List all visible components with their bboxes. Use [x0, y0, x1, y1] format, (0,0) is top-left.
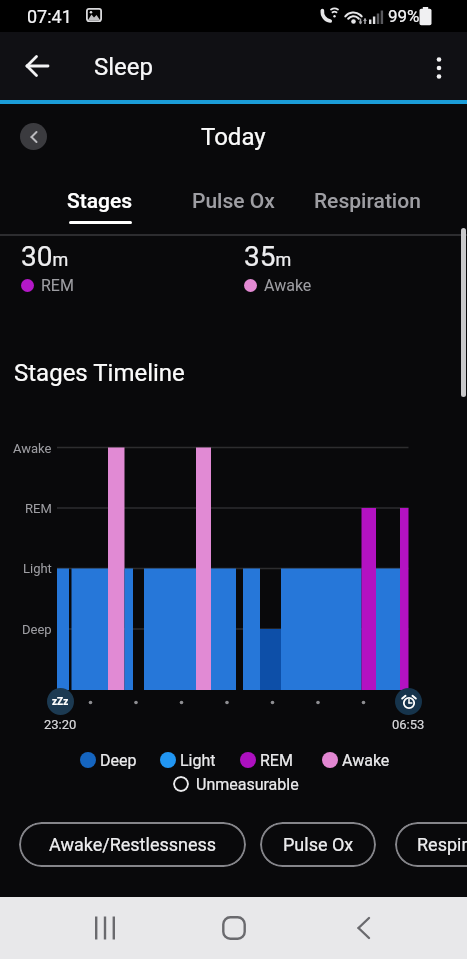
staticText: zZz — [52, 696, 69, 708]
staticText: 23:20 — [44, 717, 77, 732]
button[interactable] — [417, 44, 461, 88]
staticText: 06:53 — [392, 717, 425, 732]
button[interactable]: Pulse Ox — [173, 180, 293, 222]
button[interactable] — [20, 123, 47, 150]
button[interactable] — [15, 44, 59, 88]
staticText: Light — [23, 561, 52, 576]
staticText: REM — [25, 501, 52, 516]
button[interactable] — [212, 906, 256, 950]
button[interactable]: Stages — [40, 180, 160, 222]
staticText: Deep — [22, 622, 52, 637]
staticText: Awake/Restlessness — [49, 834, 217, 855]
button[interactable] — [83, 906, 127, 950]
staticText: Pulse Ox — [283, 834, 354, 855]
staticText: REM — [41, 276, 74, 295]
button[interactable]: Awake/Restlessness — [19, 822, 246, 867]
button[interactable] — [341, 906, 385, 950]
staticText: REM — [260, 751, 293, 770]
staticText: Unmeasurable — [196, 775, 299, 794]
staticText: Respiration — [314, 189, 421, 214]
staticText: Awake — [13, 441, 52, 456]
staticText: Light — [180, 751, 216, 770]
button[interactable]: Pulse Ox — [260, 822, 376, 867]
staticText: Today — [201, 123, 266, 151]
button[interactable]: Respiration — [395, 822, 467, 867]
staticText: 07:41 — [27, 6, 72, 27]
staticText: Awake — [342, 751, 390, 770]
staticText: Pulse Ox — [192, 189, 275, 214]
staticText: Sleep — [94, 53, 154, 81]
staticText: Awake — [264, 276, 312, 295]
staticText: 99% — [388, 6, 420, 26]
staticText: Stages — [67, 189, 133, 214]
staticText: Deep — [100, 751, 137, 770]
button[interactable]: Respiration — [307, 180, 427, 222]
staticText: 30m — [21, 240, 69, 272]
staticText: Stages Timeline — [14, 359, 185, 387]
staticText: 35m — [244, 240, 292, 272]
staticText: Respiration — [417, 834, 467, 855]
